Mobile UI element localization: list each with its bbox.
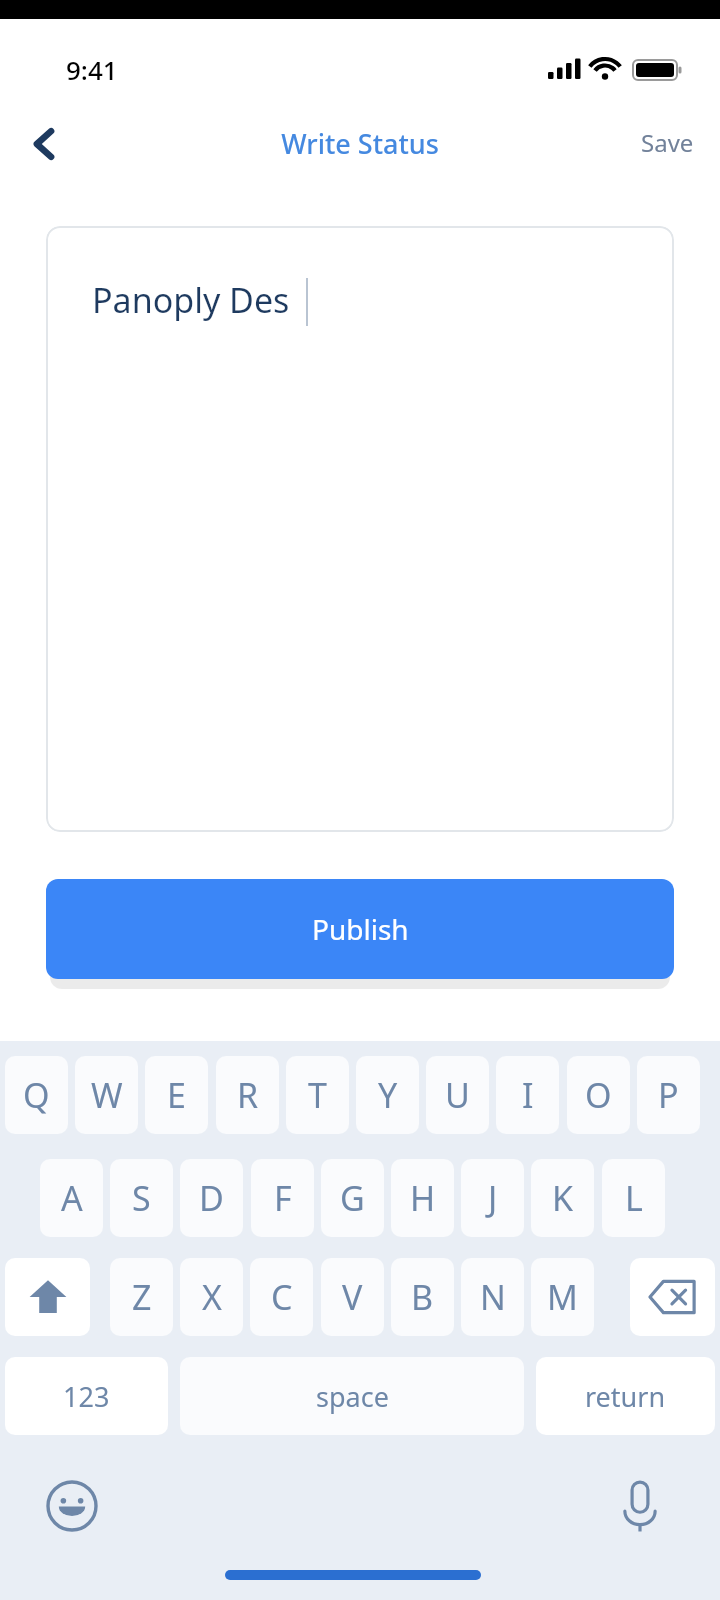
button[interactable]: Shift <box>5 1258 90 1336</box>
button[interactable]: T <box>286 1056 349 1134</box>
staticText: Panoply Des <box>92 277 290 323</box>
button[interactable]: I <box>496 1056 559 1134</box>
staticText: C <box>271 1274 293 1320</box>
button[interactable]: Emoji keyboard <box>32 1466 112 1546</box>
button[interactable]: R <box>216 1056 279 1134</box>
staticText: Write Status <box>0 125 720 162</box>
staticText: F <box>274 1175 292 1221</box>
staticText: space <box>316 1378 389 1415</box>
button[interactable]: L <box>602 1159 665 1237</box>
button[interactable]: Back <box>10 109 80 179</box>
staticText: R <box>237 1072 259 1118</box>
staticText: K <box>552 1175 574 1221</box>
staticText: O <box>585 1072 612 1118</box>
button[interactable]: return <box>536 1357 715 1435</box>
staticText: W <box>91 1072 123 1118</box>
staticText: E <box>167 1072 186 1118</box>
staticText: G <box>340 1175 365 1221</box>
staticText: I <box>522 1072 534 1118</box>
staticText: J <box>488 1175 498 1221</box>
button[interactable]: Q <box>5 1056 68 1134</box>
button[interactable]: Voice input <box>600 1466 680 1546</box>
staticText: T <box>308 1072 327 1118</box>
staticText: X <box>202 1274 222 1320</box>
button[interactable]: O <box>567 1056 630 1134</box>
button[interactable]: F <box>251 1159 314 1237</box>
button[interactable]: W <box>75 1056 138 1134</box>
button[interactable]: D <box>180 1159 243 1237</box>
staticText: 123 <box>63 1378 110 1415</box>
staticText: 9:41 <box>66 52 118 87</box>
staticText: P <box>658 1072 679 1118</box>
button[interactable]: Backspace <box>630 1258 715 1336</box>
button[interactable]: E <box>145 1056 208 1134</box>
button[interactable]: P <box>637 1056 700 1134</box>
button[interactable]: A <box>40 1159 103 1237</box>
staticText: Q <box>23 1072 50 1118</box>
staticText: A <box>61 1175 83 1221</box>
staticText: Save <box>641 126 694 159</box>
button[interactable]: Z <box>110 1258 173 1336</box>
button[interactable]: V <box>321 1258 384 1336</box>
button[interactable]: space <box>180 1357 524 1435</box>
staticText: return <box>585 1378 666 1415</box>
staticText: L <box>625 1175 643 1221</box>
button[interactable]: J <box>461 1159 524 1237</box>
staticText: Z <box>132 1274 152 1320</box>
button[interactable]: C <box>250 1258 313 1336</box>
button[interactable]: G <box>321 1159 384 1237</box>
staticText: B <box>411 1274 434 1320</box>
staticText: U <box>445 1072 470 1118</box>
button[interactable]: M <box>531 1258 594 1336</box>
staticText: V <box>342 1274 363 1320</box>
button[interactable]: Publish <box>46 879 674 979</box>
staticText: D <box>199 1175 224 1221</box>
button[interactable]: Save <box>627 116 708 169</box>
button[interactable]: N <box>461 1258 524 1336</box>
button[interactable]: Y <box>356 1056 419 1134</box>
button[interactable]: U <box>426 1056 489 1134</box>
button[interactable]: K <box>531 1159 594 1237</box>
staticText: H <box>410 1175 436 1221</box>
staticText: N <box>480 1274 506 1320</box>
button[interactable]: B <box>391 1258 454 1336</box>
staticText: S <box>132 1175 151 1221</box>
staticText: Y <box>378 1072 398 1118</box>
staticText: Publish <box>312 910 409 948</box>
staticText: M <box>547 1274 578 1320</box>
button[interactable]: S <box>110 1159 173 1237</box>
button[interactable]: Panoply Des <box>46 226 674 832</box>
button[interactable]: H <box>391 1159 454 1237</box>
button[interactable]: 123 <box>5 1357 168 1435</box>
button[interactable]: X <box>180 1258 243 1336</box>
